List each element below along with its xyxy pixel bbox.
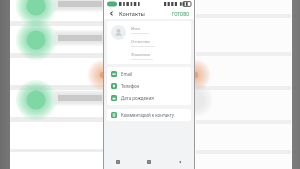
staticText: Телефон xyxy=(121,83,140,89)
staticText: Имя xyxy=(131,26,140,32)
button[interactable]: Последние приложения xyxy=(112,156,124,168)
staticText: Фамилия xyxy=(131,52,151,58)
staticText: Контакты xyxy=(119,10,145,17)
button[interactable]: Комментарий к контакту xyxy=(107,109,191,121)
button[interactable]: Фото контакта xyxy=(107,21,191,64)
button[interactable]: Телефон xyxy=(107,80,191,92)
button[interactable]: Email xyxy=(107,68,191,80)
button[interactable]: ГОТОВО xyxy=(171,10,191,18)
staticText: ГОТОВО xyxy=(172,11,190,17)
button[interactable]: Назад xyxy=(107,9,116,18)
staticText: Дата рождения xyxy=(121,95,154,101)
button[interactable]: Назад xyxy=(174,156,186,168)
staticText: Комментарий к контакту xyxy=(121,112,174,118)
button[interactable]: Дата рождения xyxy=(107,92,191,104)
other: Фото контакта xyxy=(111,25,126,40)
staticText: Отчество xyxy=(131,39,150,45)
button[interactable]: Главный экран xyxy=(143,156,155,168)
staticText: Email xyxy=(121,71,133,77)
